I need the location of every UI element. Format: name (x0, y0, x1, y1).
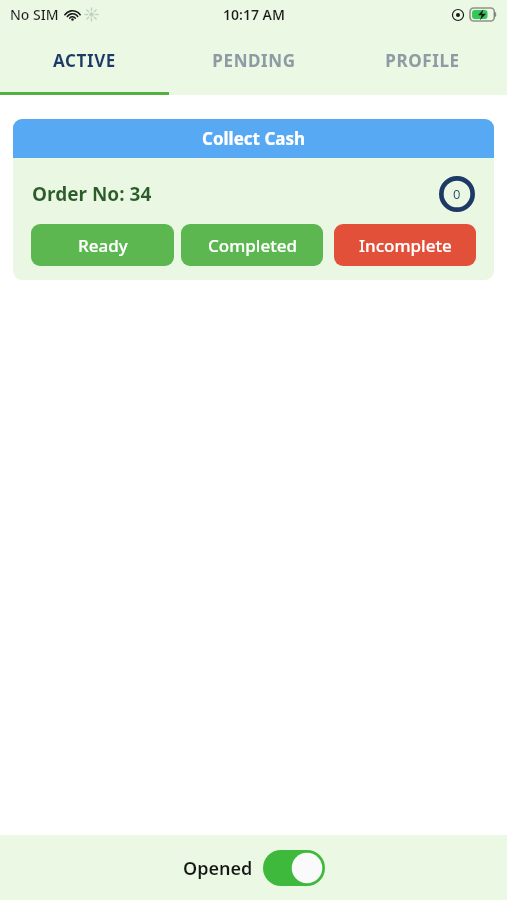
staticText: Collect Cash (202, 127, 306, 150)
staticText: No SIM (10, 5, 59, 24)
button[interactable]: Ready (31, 224, 174, 266)
staticText: Order No: 34 (32, 181, 152, 207)
button[interactable]: Collect Cash (13, 119, 494, 158)
button[interactable]: Completed (181, 224, 323, 266)
button[interactable]: Opened (183, 850, 325, 886)
button[interactable]: Incomplete (334, 224, 476, 266)
staticText: PROFILE (385, 49, 460, 72)
button[interactable]: Item count 0 (439, 176, 475, 212)
staticText: ACTIVE (53, 49, 116, 72)
button[interactable]: ACTIVE (0, 29, 169, 92)
staticText: Incomplete (359, 234, 452, 257)
other: Opened toggle, on (263, 850, 325, 886)
button[interactable]: PROFILE (338, 29, 507, 92)
staticText: 0 (453, 185, 461, 203)
staticText: 10:17 AM (223, 5, 285, 24)
staticText: Completed (208, 234, 297, 257)
staticText: Ready (78, 234, 128, 257)
button[interactable]: PENDING (169, 29, 338, 92)
staticText: Opened (183, 856, 253, 881)
staticText: PENDING (212, 49, 296, 72)
